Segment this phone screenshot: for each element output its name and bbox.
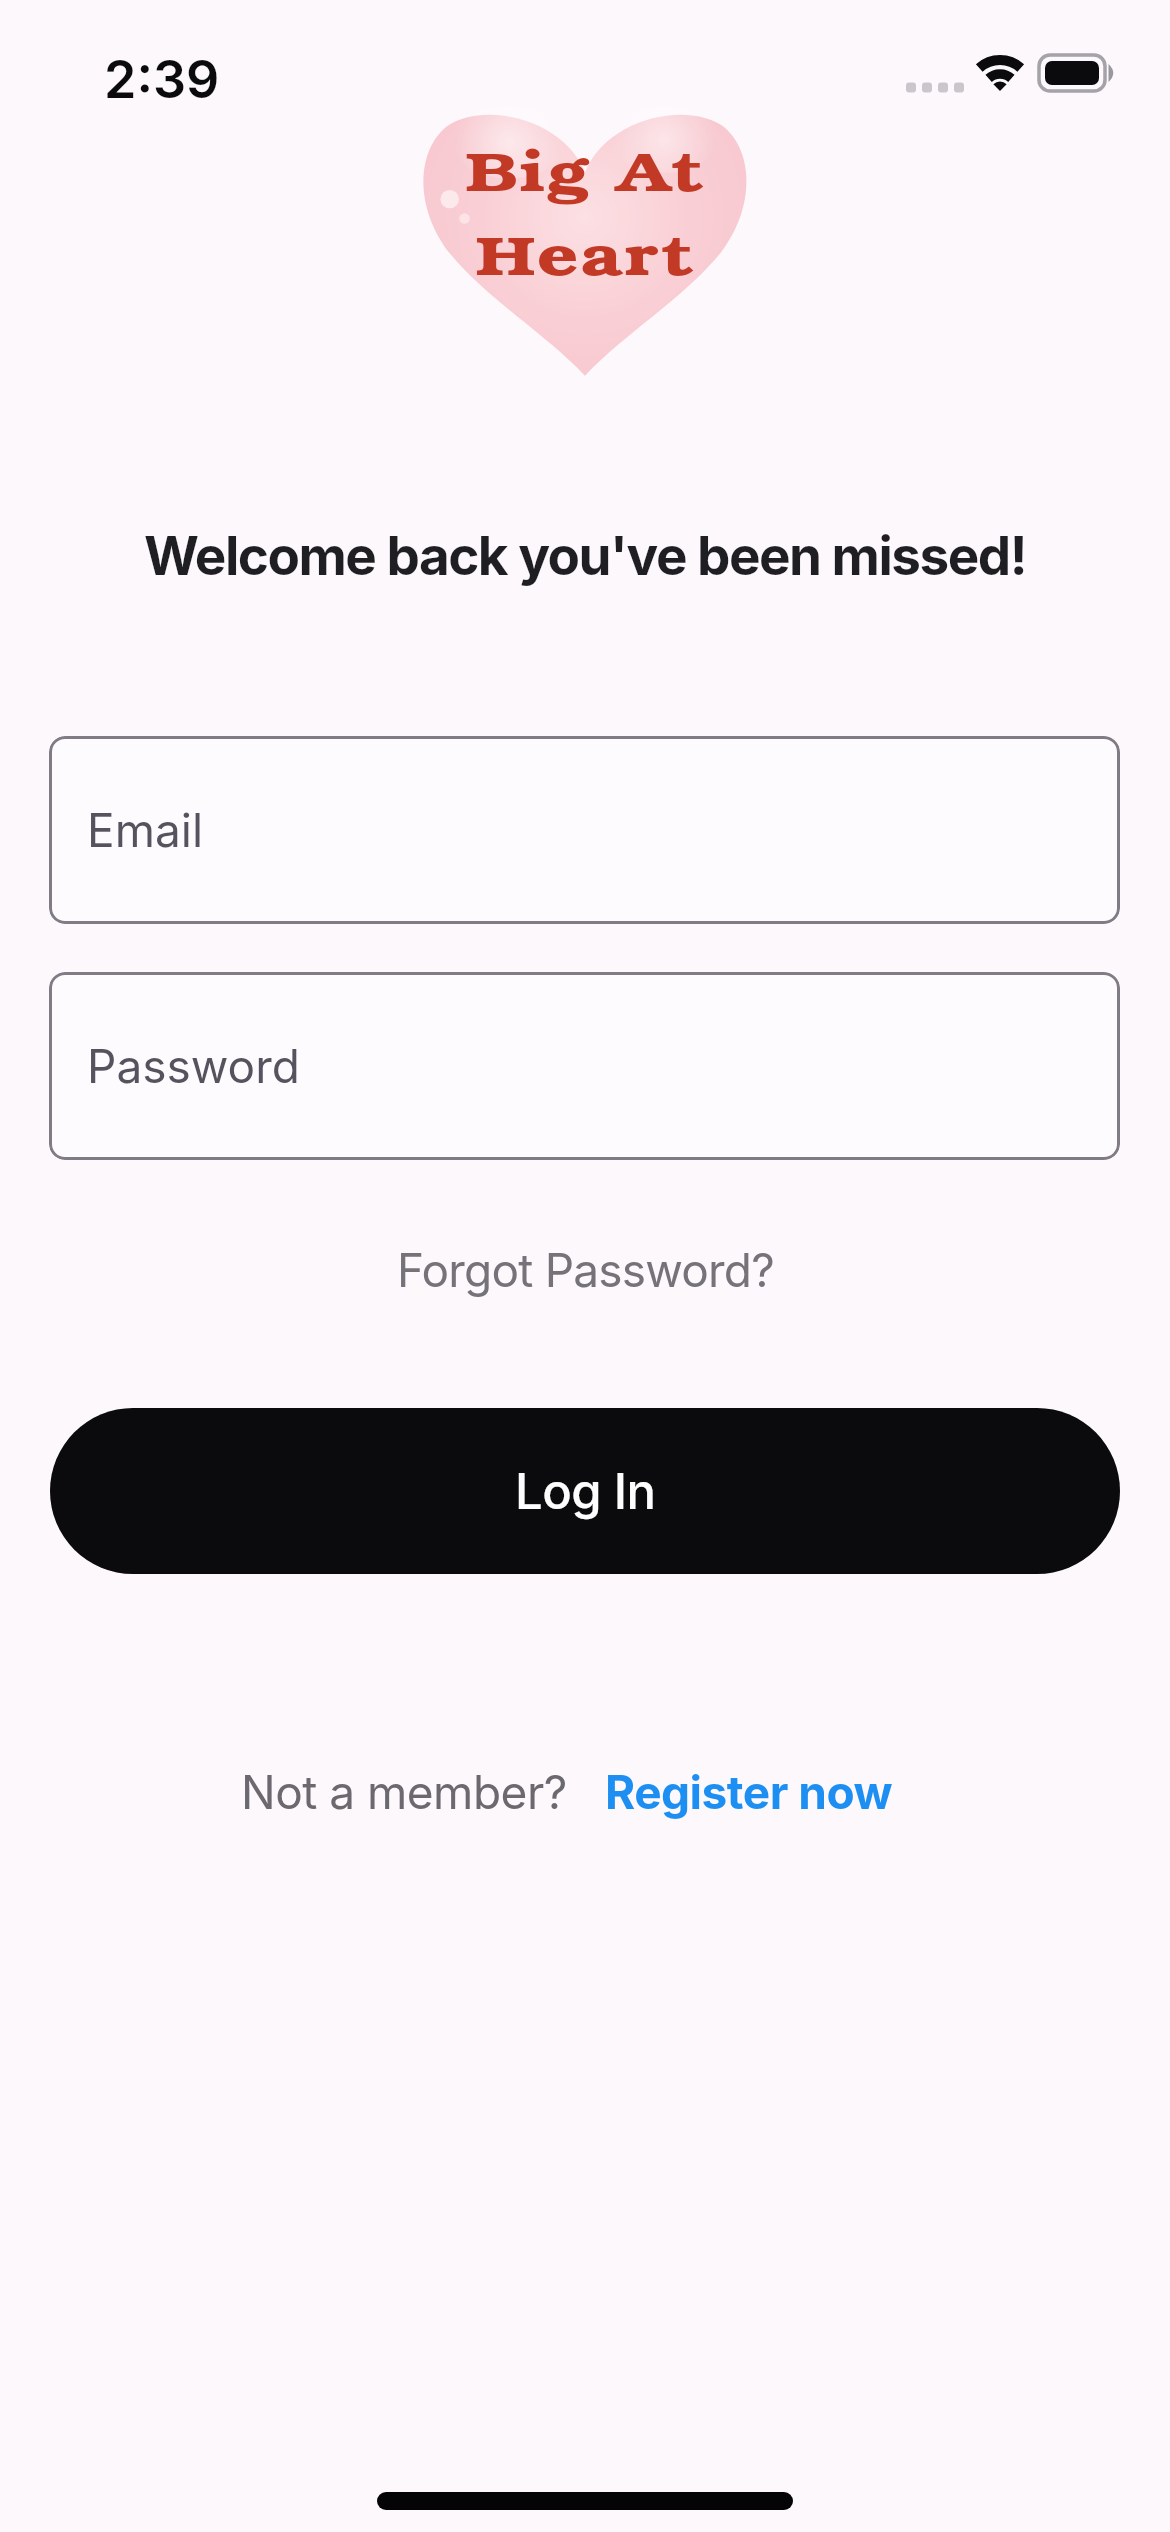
staticText: Not a member?	[241, 1764, 567, 1820]
staticText: 2:39	[104, 48, 220, 98]
staticText: Welcome back you've been missed!	[144, 524, 1027, 588]
staticText: Email	[87, 802, 204, 858]
staticText: Big At Heart	[465, 128, 706, 291]
button[interactable]: Email	[49, 736, 1120, 924]
button[interactable]: Forgot Password?	[397, 1242, 774, 1298]
staticText: Password	[87, 1038, 300, 1094]
button[interactable]: Register now	[605, 1764, 893, 1820]
staticText: Log In	[515, 1462, 656, 1521]
button[interactable]: Big At Heart	[420, 106, 750, 384]
button[interactable]: Password	[49, 972, 1120, 1160]
staticText: Register now	[605, 1764, 893, 1820]
button[interactable]: Log In	[50, 1408, 1120, 1574]
staticText: Forgot Password?	[397, 1242, 774, 1298]
